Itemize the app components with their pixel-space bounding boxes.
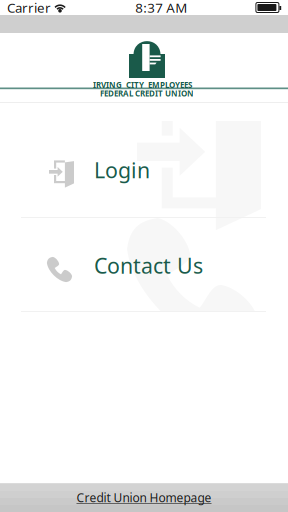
staticText: Credit Union Homepage: [76, 489, 211, 505]
staticText: FEDERAL CREDIT UNION: [100, 88, 194, 99]
staticText: Contact Us: [94, 251, 203, 280]
staticText: IRVING CITY EMPLOYEES: [93, 79, 192, 90]
button[interactable]: Contact Us: [0, 218, 288, 311]
staticText: 8:37 AM: [135, 0, 187, 16]
button[interactable]: Credit Union Homepage: [0, 483, 288, 512]
staticText: Carrier: [7, 0, 51, 16]
button[interactable]: Login: [0, 103, 288, 217]
staticText: Login: [94, 156, 150, 184]
